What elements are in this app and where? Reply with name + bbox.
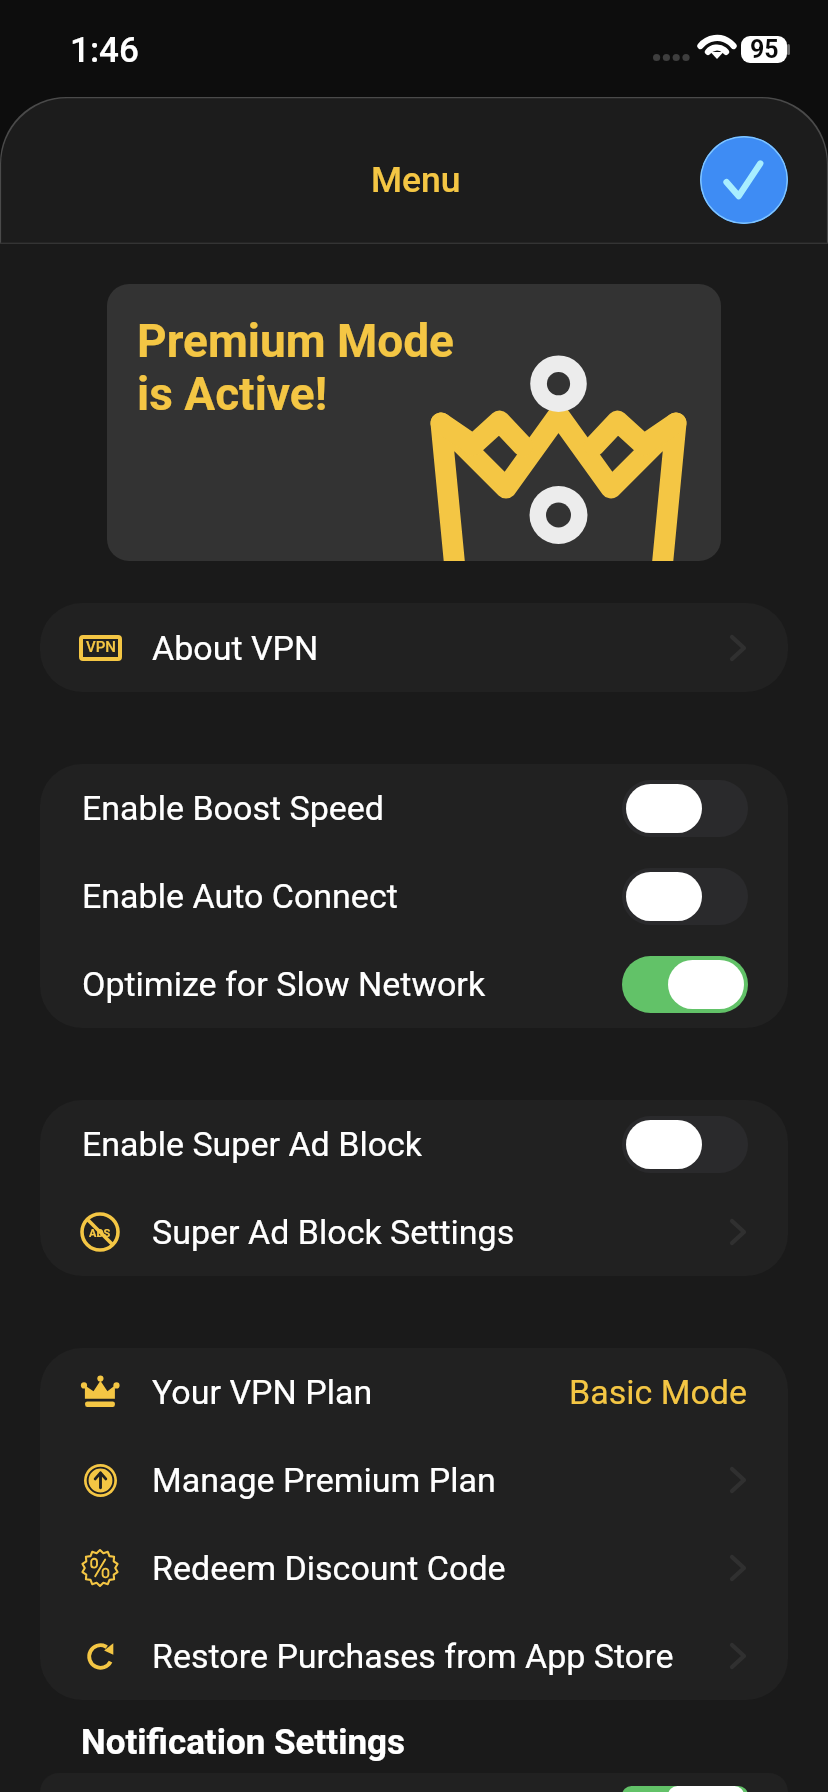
staticText: VPN [86,638,116,656]
staticText: Enable Auto Connect [82,876,622,916]
staticText: Your VPN Plan [152,1372,561,1412]
button[interactable]: Enable Super Ad Block [40,1100,788,1188]
staticText: Super Ad Block Settings [152,1212,722,1252]
button[interactable]: Notifications on [40,1773,788,1792]
button[interactable]: Manage Premium Plan [40,1436,788,1524]
staticText: Premium Mode is Active! [137,314,454,421]
button[interactable]: Optimize for Slow Network [40,940,788,1028]
button[interactable]: Redeem Discount Code [40,1524,788,1612]
staticText: About VPN [152,628,722,668]
staticText: Enable Boost Speed [82,788,622,828]
button[interactable]: Off [622,1116,748,1173]
staticText: Redeem Discount Code [152,1548,722,1588]
staticText: ADS [89,1227,111,1240]
button[interactable]: Restore Purchases from App Store [40,1612,788,1700]
staticText: Optimize for Slow Network [82,964,622,1004]
staticText: Manage Premium Plan [152,1460,722,1500]
staticText: Enable Super Ad Block [82,1124,622,1164]
staticText: Menu [371,159,461,201]
button[interactable]: Enable Auto Connect [40,852,788,940]
button[interactable]: Enable Boost Speed [40,764,788,852]
button[interactable]: ADS [40,1188,788,1276]
button[interactable]: Off [622,780,748,837]
staticText: Restore Purchases from App Store [152,1636,722,1676]
staticText: Basic Mode [569,1372,748,1412]
button[interactable]: Notifications on [622,1786,748,1792]
button[interactable]: Confirm [700,136,788,224]
button[interactable]: On [622,956,748,1013]
staticText: Notification Settings [81,1722,406,1763]
staticText: 95 [750,35,779,62]
button[interactable]: Premium Mode is Active! [107,284,721,561]
button[interactable]: VPN [40,603,788,692]
button[interactable]: Off [622,868,748,925]
staticText: 1:46 [70,30,139,71]
button[interactable]: Your VPN Plan [40,1348,788,1436]
